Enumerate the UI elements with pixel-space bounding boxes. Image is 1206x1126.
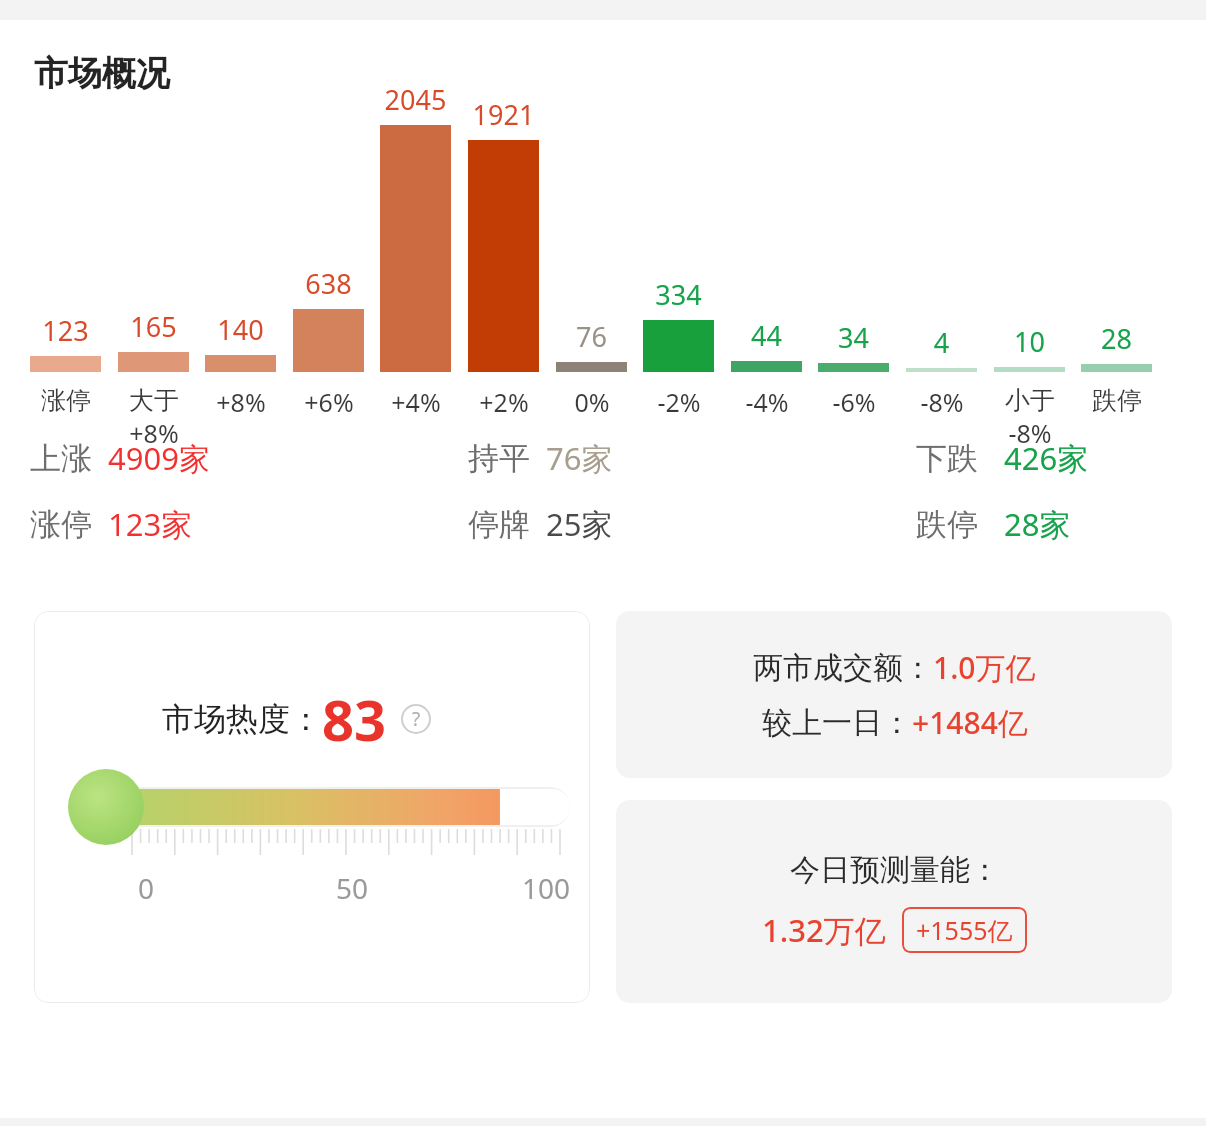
staticText: 市场热度： — [162, 699, 322, 739]
staticText: +4% — [391, 385, 441, 419]
staticText: 25家 — [546, 503, 613, 545]
staticText: 50 — [336, 869, 369, 907]
staticText: 上涨 — [30, 439, 92, 478]
staticText: 76 — [548, 318, 635, 355]
staticText: 28家 — [1004, 503, 1071, 545]
staticText: 100 — [522, 869, 571, 907]
staticText: 4909家 — [108, 437, 210, 479]
button[interactable]: 两市成交额： — [616, 611, 1172, 778]
staticText: -8% — [920, 385, 964, 419]
staticText: 76家 — [546, 437, 613, 479]
staticText: +6% — [304, 385, 354, 419]
staticText: 下跌 — [916, 439, 978, 478]
staticText: 34 — [810, 319, 897, 356]
staticText: 0 — [138, 869, 155, 907]
button[interactable]: 今日预测量能： — [616, 800, 1172, 1003]
staticText: 涨停 — [30, 505, 92, 544]
staticText: 123 — [22, 312, 109, 349]
staticText: 跌停 — [1092, 385, 1142, 416]
staticText: 2045 — [372, 81, 459, 118]
staticText: 1.0万亿 — [933, 647, 1036, 688]
staticText: 334 — [635, 276, 722, 313]
staticText: 跌停 — [916, 505, 978, 544]
staticText: 165 — [110, 308, 197, 345]
staticText: 0% — [574, 385, 610, 419]
staticText: 今日预测量能： — [790, 851, 1000, 889]
staticText: +1555亿 — [916, 913, 1013, 947]
button[interactable]: 市场热度： — [34, 611, 590, 1003]
staticText: 大于 — [129, 385, 179, 416]
staticText: 市场概况 — [34, 52, 170, 95]
staticText: 83 — [322, 681, 387, 757]
staticText: 涨停 — [41, 385, 91, 416]
staticText: 28 — [1073, 320, 1160, 357]
staticText: -2% — [657, 385, 701, 419]
staticText: 停牌 — [468, 505, 530, 544]
staticText: +8% — [129, 416, 179, 450]
staticText: 4 — [898, 324, 985, 361]
staticText: -4% — [745, 385, 789, 419]
staticText: +8% — [216, 385, 266, 419]
staticText: +2% — [479, 385, 529, 419]
staticText: 较上一日： — [762, 704, 912, 742]
staticText: -8% — [1008, 416, 1052, 450]
staticText: 140 — [197, 311, 284, 348]
staticText: 1921 — [460, 96, 547, 133]
staticText: 44 — [723, 317, 810, 354]
staticText: 123家 — [108, 503, 193, 545]
staticText: 426家 — [1004, 437, 1089, 479]
staticText: -6% — [832, 385, 876, 419]
staticText: +1484亿 — [912, 702, 1028, 743]
staticText: 638 — [285, 265, 372, 302]
button[interactable]: 帮助说明 — [401, 704, 431, 734]
staticText: 1.32万亿 — [762, 909, 886, 951]
staticText: ? — [412, 706, 421, 732]
staticText: 小于 — [1005, 385, 1055, 416]
staticText: 持平 — [468, 439, 530, 478]
staticText: 两市成交额： — [753, 649, 933, 687]
staticText: 10 — [986, 323, 1073, 360]
